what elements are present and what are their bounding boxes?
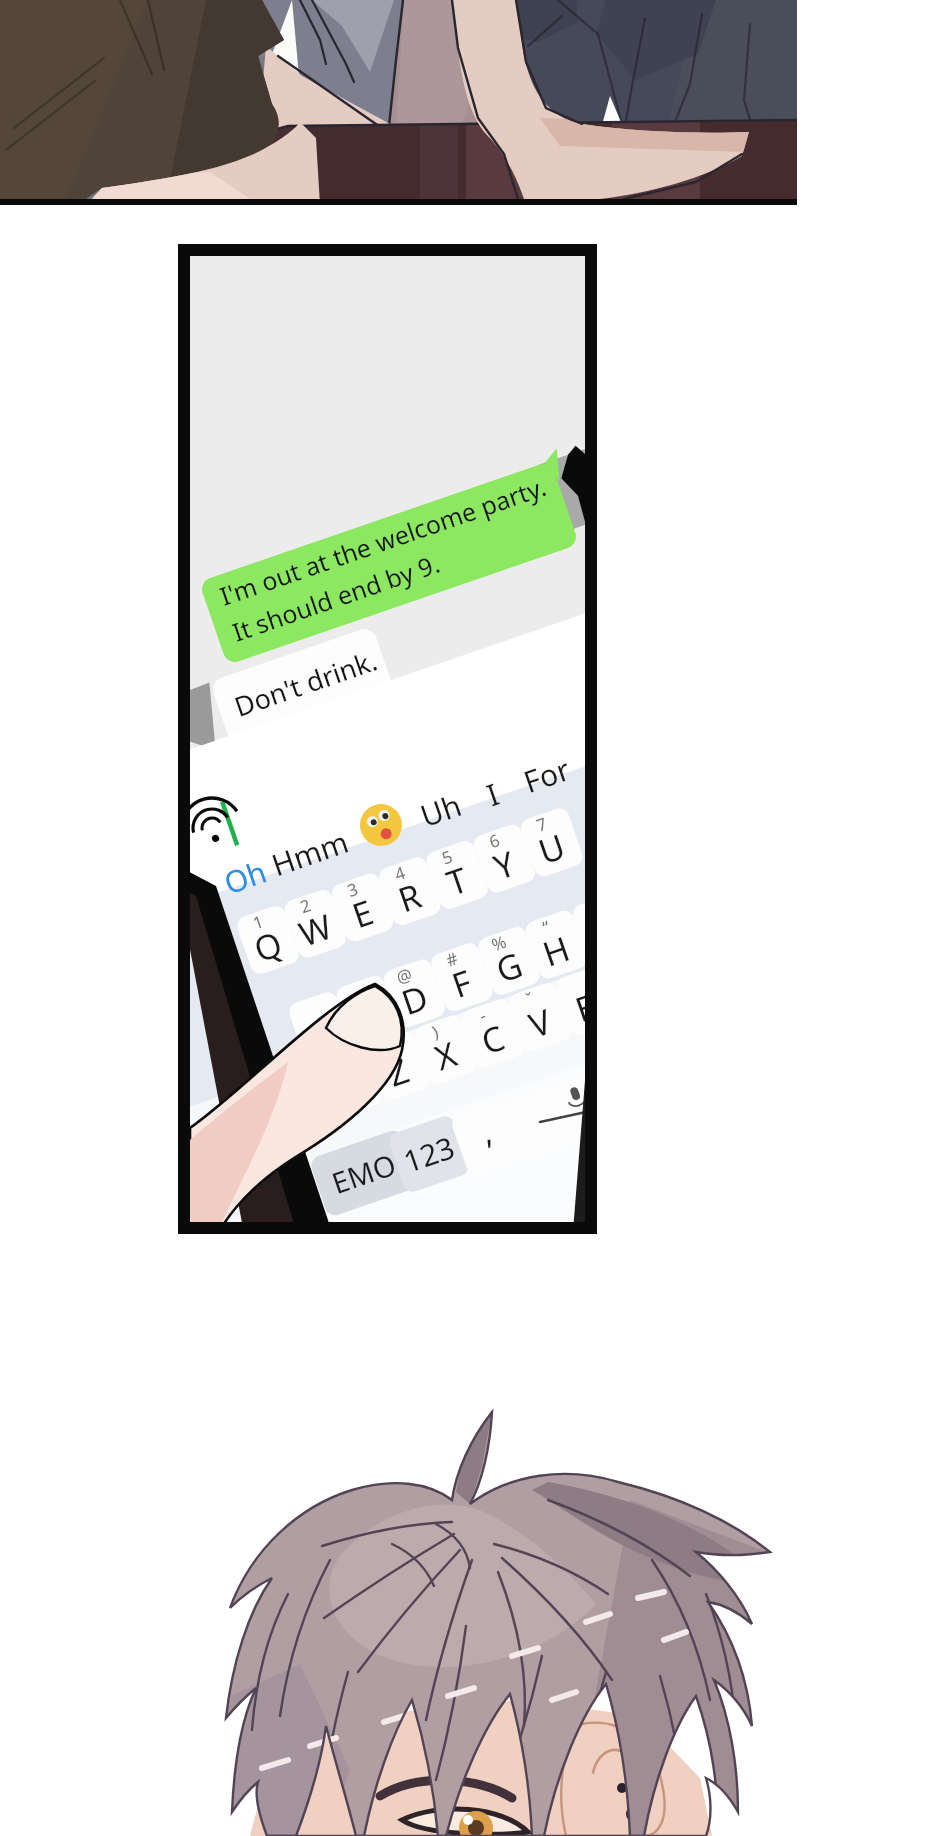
button[interactable]: Comic panel 3 bbox=[0, 1240, 940, 1836]
button[interactable]: Comic panel 1 bbox=[0, 0, 940, 200]
button[interactable]: Comic panel 2 bbox=[0, 200, 940, 1240]
